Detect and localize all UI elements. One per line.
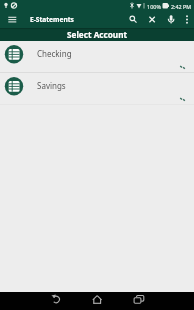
button[interactable] <box>89 292 107 310</box>
button[interactable] <box>48 292 66 310</box>
staticText: 2:42 PM <box>171 3 192 10</box>
button[interactable]: Checking <box>0 41 194 72</box>
button[interactable] <box>180 11 194 28</box>
staticText: 100% <box>147 3 162 10</box>
button[interactable] <box>132 11 148 28</box>
button[interactable] <box>164 11 180 28</box>
staticText: Select Account <box>67 29 128 40</box>
button[interactable] <box>130 292 148 310</box>
button[interactable] <box>0 11 24 28</box>
button[interactable]: Savings <box>0 73 194 104</box>
staticText: E-Statements <box>30 15 74 24</box>
staticText: Checking <box>37 48 72 59</box>
staticText: Savings <box>37 80 66 91</box>
button[interactable] <box>148 11 164 28</box>
